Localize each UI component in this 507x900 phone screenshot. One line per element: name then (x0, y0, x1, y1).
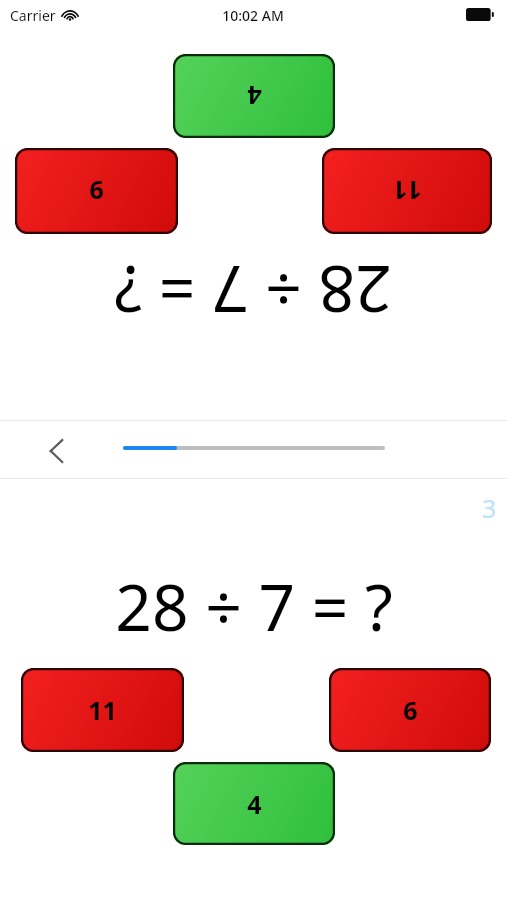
button[interactable]: 11 (322, 148, 492, 234)
staticText: 11 (88, 693, 117, 727)
staticText: 11 (393, 174, 422, 208)
button[interactable]: 9 (15, 148, 178, 234)
staticText: 10:02 AM (222, 6, 284, 25)
staticText: 28 ÷ 7 = ? (115, 563, 393, 647)
button[interactable]: 4 (173, 762, 335, 845)
staticText: 9 (89, 174, 104, 208)
button[interactable]: Back (30, 424, 84, 478)
staticText: Carrier (10, 6, 56, 25)
staticText: 4 (247, 787, 262, 821)
staticText: 28 ÷ 7 = ? (114, 250, 392, 334)
button[interactable]: 6 (329, 668, 491, 752)
staticText: 6 (403, 693, 418, 727)
staticText: 3 (482, 491, 497, 525)
button[interactable]: 11 (21, 668, 184, 752)
button[interactable]: 4 (173, 54, 335, 138)
staticText: 4 (247, 79, 262, 113)
